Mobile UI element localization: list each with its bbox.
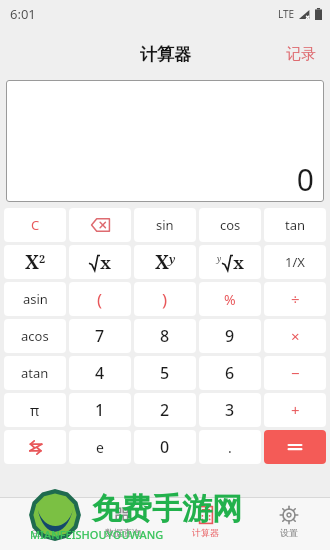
staticText: MIANFEISHOUYOUWANG	[30, 527, 164, 542]
button[interactable]: 记录	[272, 37, 330, 72]
staticText: .	[228, 438, 232, 457]
button[interactable]: e	[69, 430, 131, 464]
button[interactable]: ÷	[264, 282, 326, 316]
button[interactable]: +	[264, 393, 326, 427]
button[interactable]: Backspace	[69, 208, 131, 242]
button[interactable]: )	[134, 282, 196, 316]
button[interactable]: −	[264, 356, 326, 390]
button[interactable]: Swap units	[4, 430, 66, 464]
staticText: 主页	[32, 527, 50, 538]
staticText: tan	[285, 216, 306, 234]
button[interactable]: asin	[4, 282, 66, 316]
staticText: 4	[95, 362, 105, 384]
button[interactable]: 1	[69, 393, 131, 427]
button[interactable]: %	[199, 282, 261, 316]
staticText: −	[291, 363, 300, 383]
staticText: atan	[21, 364, 49, 382]
staticText: x	[233, 251, 244, 274]
button[interactable]: X	[4, 245, 66, 279]
staticText: 2	[160, 399, 170, 421]
staticText: 7	[95, 325, 105, 347]
button[interactable]: 8	[134, 319, 196, 353]
button[interactable]: ×	[264, 319, 326, 353]
button[interactable]: 计算器	[164, 498, 247, 550]
staticText: 6:01	[10, 5, 36, 23]
staticText: 1	[95, 399, 105, 421]
staticText: y	[169, 251, 176, 266]
button[interactable]: 6	[199, 356, 261, 390]
staticText: 设置	[280, 527, 298, 538]
button[interactable]: sin	[134, 208, 196, 242]
staticText: X	[155, 249, 169, 275]
staticText: 8	[160, 325, 170, 347]
button[interactable]: (	[69, 282, 131, 316]
button[interactable]: 5	[134, 356, 196, 390]
staticText: %	[224, 290, 236, 309]
staticText: 计算器	[140, 44, 191, 65]
button[interactable]: tan	[264, 208, 326, 242]
button[interactable]: 2	[134, 393, 196, 427]
staticText: acos	[21, 327, 49, 345]
button[interactable]: 4	[69, 356, 131, 390]
staticText: x	[100, 251, 111, 274]
staticText: X	[25, 249, 39, 275]
staticText: )	[162, 288, 168, 311]
button[interactable]: acos	[4, 319, 66, 353]
staticText: +	[291, 400, 300, 420]
button[interactable]: 设置	[247, 498, 330, 550]
staticText: 6	[225, 362, 235, 384]
button[interactable]: 主页	[0, 498, 82, 550]
button[interactable]: x	[69, 245, 131, 279]
staticText: 3	[225, 399, 235, 421]
staticText: ×	[291, 326, 300, 346]
staticText: cos	[220, 216, 241, 234]
staticText: asin	[23, 290, 48, 308]
staticText: 免费手游网	[92, 490, 242, 528]
button[interactable]: 数据查询	[82, 498, 164, 550]
staticText: ÷	[291, 289, 300, 309]
staticText: π	[30, 401, 40, 420]
staticText: 9	[225, 325, 235, 347]
button[interactable]: π	[4, 393, 66, 427]
staticText: C	[31, 216, 40, 234]
button[interactable]	[264, 430, 326, 464]
staticText: (	[97, 288, 103, 311]
button[interactable]: atan	[4, 356, 66, 390]
button[interactable]: y	[199, 245, 261, 279]
staticText: 计算器	[192, 527, 219, 538]
staticText: 0	[296, 159, 314, 200]
staticText: LTE	[278, 7, 295, 21]
button[interactable]: cos	[199, 208, 261, 242]
staticText: 数据查询	[105, 527, 141, 538]
button[interactable]: 9	[199, 319, 261, 353]
staticText: sin	[156, 216, 174, 234]
staticText: y	[217, 253, 222, 264]
button[interactable]: 3	[199, 393, 261, 427]
button[interactable]: .	[199, 430, 261, 464]
staticText: 5	[160, 362, 170, 384]
staticText: 记录	[286, 45, 316, 64]
staticText: 0	[160, 436, 170, 458]
button[interactable]: 0	[134, 430, 196, 464]
button[interactable]: 1/X	[264, 245, 326, 279]
staticText: e	[96, 438, 104, 457]
staticText: 2	[39, 251, 46, 266]
button[interactable]: C	[4, 208, 66, 242]
button[interactable]: X	[134, 245, 196, 279]
button[interactable]: 7	[69, 319, 131, 353]
staticText: 1/X	[285, 253, 305, 271]
